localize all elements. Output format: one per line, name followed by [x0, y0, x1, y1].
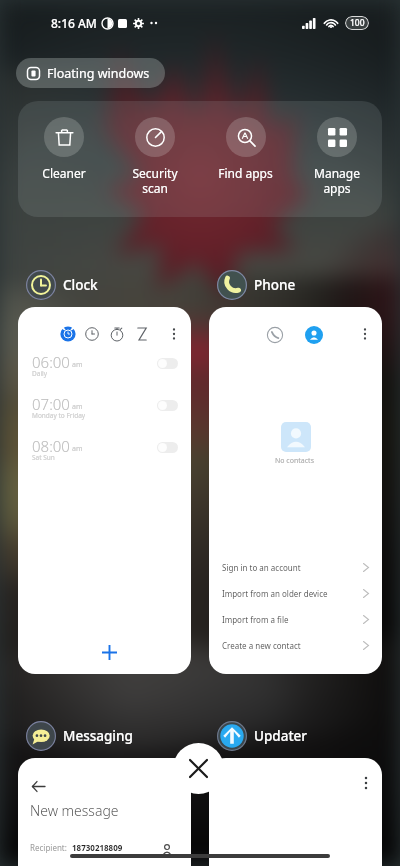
staticText: Sign in to an account [222, 562, 301, 573]
staticText: am [72, 402, 83, 412]
staticText: 18730218809 [72, 842, 123, 853]
button[interactable]: More options [357, 774, 375, 792]
staticText: Import from a file [222, 614, 289, 625]
staticText: Floating windows [47, 65, 150, 82]
button[interactable]: Dialer [209, 307, 382, 674]
staticText: Messaging [63, 727, 133, 745]
button[interactable]: Dialer [266, 326, 284, 344]
button[interactable]: Sign in to an account [209, 555, 382, 579]
button[interactable] [157, 358, 178, 369]
button[interactable] [157, 400, 178, 411]
button[interactable]: Messaging [26, 721, 139, 751]
button[interactable]: Security scan [109, 101, 200, 217]
button[interactable]: Add alarm [92, 635, 126, 669]
button[interactable]: More options [357, 326, 373, 342]
button[interactable]: Import from an older device [209, 581, 382, 605]
button[interactable]: Floating windows [16, 58, 165, 88]
button[interactable]: 08:00 [18, 435, 191, 471]
staticText: Manage apps [314, 165, 360, 196]
staticText: Phone [254, 276, 296, 294]
staticText: 06:00 [32, 352, 70, 372]
button[interactable]: More options [209, 758, 382, 866]
staticText: Security scan [132, 165, 178, 196]
button[interactable]: Back [26, 774, 50, 798]
button[interactable]: Find apps [200, 101, 291, 217]
staticText: am [72, 444, 83, 454]
button[interactable]: More options [166, 326, 182, 342]
staticText: Import from an older device [222, 588, 328, 599]
button[interactable]: Import from a file [209, 607, 382, 631]
button[interactable] [157, 442, 178, 453]
staticText: 07:00 [32, 394, 70, 414]
staticText: Sat Sun [32, 453, 55, 462]
staticText: 100 [350, 17, 365, 29]
button[interactable]: Manage apps [291, 101, 382, 217]
button[interactable]: Updater [217, 721, 314, 751]
button[interactable]: Clock [26, 270, 104, 300]
staticText: 08:00 [32, 436, 70, 456]
staticText: Find apps [218, 165, 273, 181]
staticText: am [72, 360, 83, 370]
staticText: Daily [32, 369, 48, 378]
button[interactable]: Contacts [305, 326, 323, 344]
button[interactable]: 07:00 [18, 393, 191, 429]
button[interactable]: Close [173, 743, 224, 794]
staticText: Monday to Friday [32, 411, 86, 420]
button[interactable]: Create a new contact [209, 633, 382, 657]
button[interactable]: Phone [217, 270, 302, 300]
staticText: Create a new contact [222, 640, 301, 651]
staticText: 8:16 AM [51, 15, 97, 31]
button[interactable]: More options [18, 307, 191, 674]
staticText: Recipient: [30, 842, 67, 853]
staticText: Clock [63, 276, 98, 294]
staticText: Updater [254, 727, 308, 745]
staticText: New message [30, 801, 119, 820]
staticText: Cleaner [42, 165, 86, 181]
button[interactable]: 06:00 [18, 351, 191, 387]
button[interactable]: Cleaner [18, 101, 109, 217]
button[interactable]: Back [18, 758, 191, 866]
staticText: No contacts [275, 456, 314, 466]
